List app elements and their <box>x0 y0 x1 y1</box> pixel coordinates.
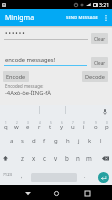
button[interactable]: ?123 <box>1 167 14 183</box>
staticText: t <box>49 123 52 131</box>
staticText: n <box>76 154 80 162</box>
staticText: c <box>43 154 46 162</box>
button[interactable]: c <box>39 150 50 166</box>
button[interactable]: Recents <box>81 187 93 199</box>
staticText: g <box>54 137 58 145</box>
button[interactable]: x <box>28 150 39 166</box>
button[interactable]: Backspace <box>98 150 112 166</box>
button[interactable]: k <box>84 133 95 149</box>
staticText: q <box>4 123 8 131</box>
staticText: Clear <box>94 36 106 42</box>
staticText: Clear <box>94 60 106 66</box>
staticText: Encode <box>6 73 26 81</box>
staticText: 3 <box>27 121 29 125</box>
button[interactable]: a <box>6 133 17 149</box>
staticText: encode messages! <box>5 56 56 64</box>
staticText: . <box>84 172 86 179</box>
staticText: 3:21 <box>99 1 110 8</box>
button[interactable]: 6 <box>56 117 67 133</box>
button[interactable]: h <box>62 133 73 149</box>
button[interactable]: Decode <box>82 71 108 82</box>
button[interactable]: Home <box>50 187 62 199</box>
staticText: x <box>32 154 36 162</box>
button[interactable]: 7 <box>67 117 78 133</box>
button[interactable]: 9 <box>90 117 101 133</box>
button[interactable]: 4 <box>34 117 45 133</box>
button[interactable]: z <box>17 150 28 166</box>
staticText: j <box>78 137 80 145</box>
button[interactable]: Voice input <box>98 106 112 118</box>
button[interactable]: 1 <box>0 117 11 133</box>
button[interactable]: s <box>17 133 28 149</box>
button[interactable]: m <box>83 150 94 166</box>
staticText: y <box>60 123 64 131</box>
button[interactable]: Clear <box>91 33 108 44</box>
staticText: 7 <box>72 121 74 125</box>
button[interactable]: More options <box>100 9 112 26</box>
staticText: k <box>88 137 92 145</box>
button[interactable]: 2 <box>11 117 22 133</box>
staticText: 8 <box>83 121 85 125</box>
staticText: 1 <box>5 121 7 125</box>
staticText: Minigma <box>5 13 35 23</box>
button[interactable]: Clear <box>91 57 108 68</box>
staticText: r <box>38 123 41 131</box>
staticText: m <box>86 154 92 162</box>
button[interactable]: v <box>50 150 61 166</box>
staticText: SEND MESSAGE <box>66 15 98 21</box>
button[interactable]: 8 <box>78 117 89 133</box>
staticText: z <box>21 154 24 162</box>
staticText: l <box>100 137 102 145</box>
button[interactable]: 0 <box>101 117 112 133</box>
staticText: 0 <box>106 121 108 125</box>
button[interactable]: Enter <box>98 172 109 183</box>
staticText: ?123 <box>3 172 13 178</box>
staticText: s <box>21 137 24 145</box>
staticText: 5 <box>50 121 52 125</box>
staticText: 9 <box>95 121 97 125</box>
button[interactable]: 3 <box>22 117 33 133</box>
staticText: -4Axò-òe-ÏING-fÀ <box>5 89 51 97</box>
staticText: 2 <box>16 121 18 125</box>
staticText: f <box>43 137 46 145</box>
staticText: Decode <box>85 73 105 81</box>
staticText: Encoded message: <box>5 83 44 89</box>
button[interactable]: 5 <box>45 117 56 133</box>
button[interactable]: d <box>28 133 39 149</box>
button[interactable]: f <box>39 133 50 149</box>
button[interactable]: n <box>72 150 83 166</box>
staticText: a <box>10 137 14 145</box>
staticText: p <box>105 123 109 131</box>
staticText: b <box>65 154 69 162</box>
button[interactable]: Back <box>22 187 34 199</box>
button[interactable]: Encode <box>3 71 29 82</box>
staticText: u <box>71 123 75 131</box>
staticText: v <box>54 154 58 162</box>
button[interactable]: g <box>50 133 61 149</box>
staticText: i <box>83 123 85 131</box>
button[interactable]: , <box>17 167 27 183</box>
button[interactable]: l <box>95 133 106 149</box>
button[interactable]: b <box>61 150 72 166</box>
button[interactable]: SEND MESSAGE <box>64 12 100 24</box>
button[interactable]: j <box>73 133 84 149</box>
button[interactable]: Shift <box>0 150 11 166</box>
staticText: 6 <box>61 121 63 125</box>
staticText: h <box>66 137 70 145</box>
staticText: , <box>21 172 23 179</box>
staticText: w <box>14 123 19 131</box>
staticText: 4 <box>39 121 41 125</box>
staticText: o <box>94 123 98 131</box>
staticText: d <box>32 137 36 145</box>
staticText: •••••• <box>5 29 26 38</box>
button[interactable]: . <box>80 167 90 183</box>
staticText: e <box>26 123 30 131</box>
